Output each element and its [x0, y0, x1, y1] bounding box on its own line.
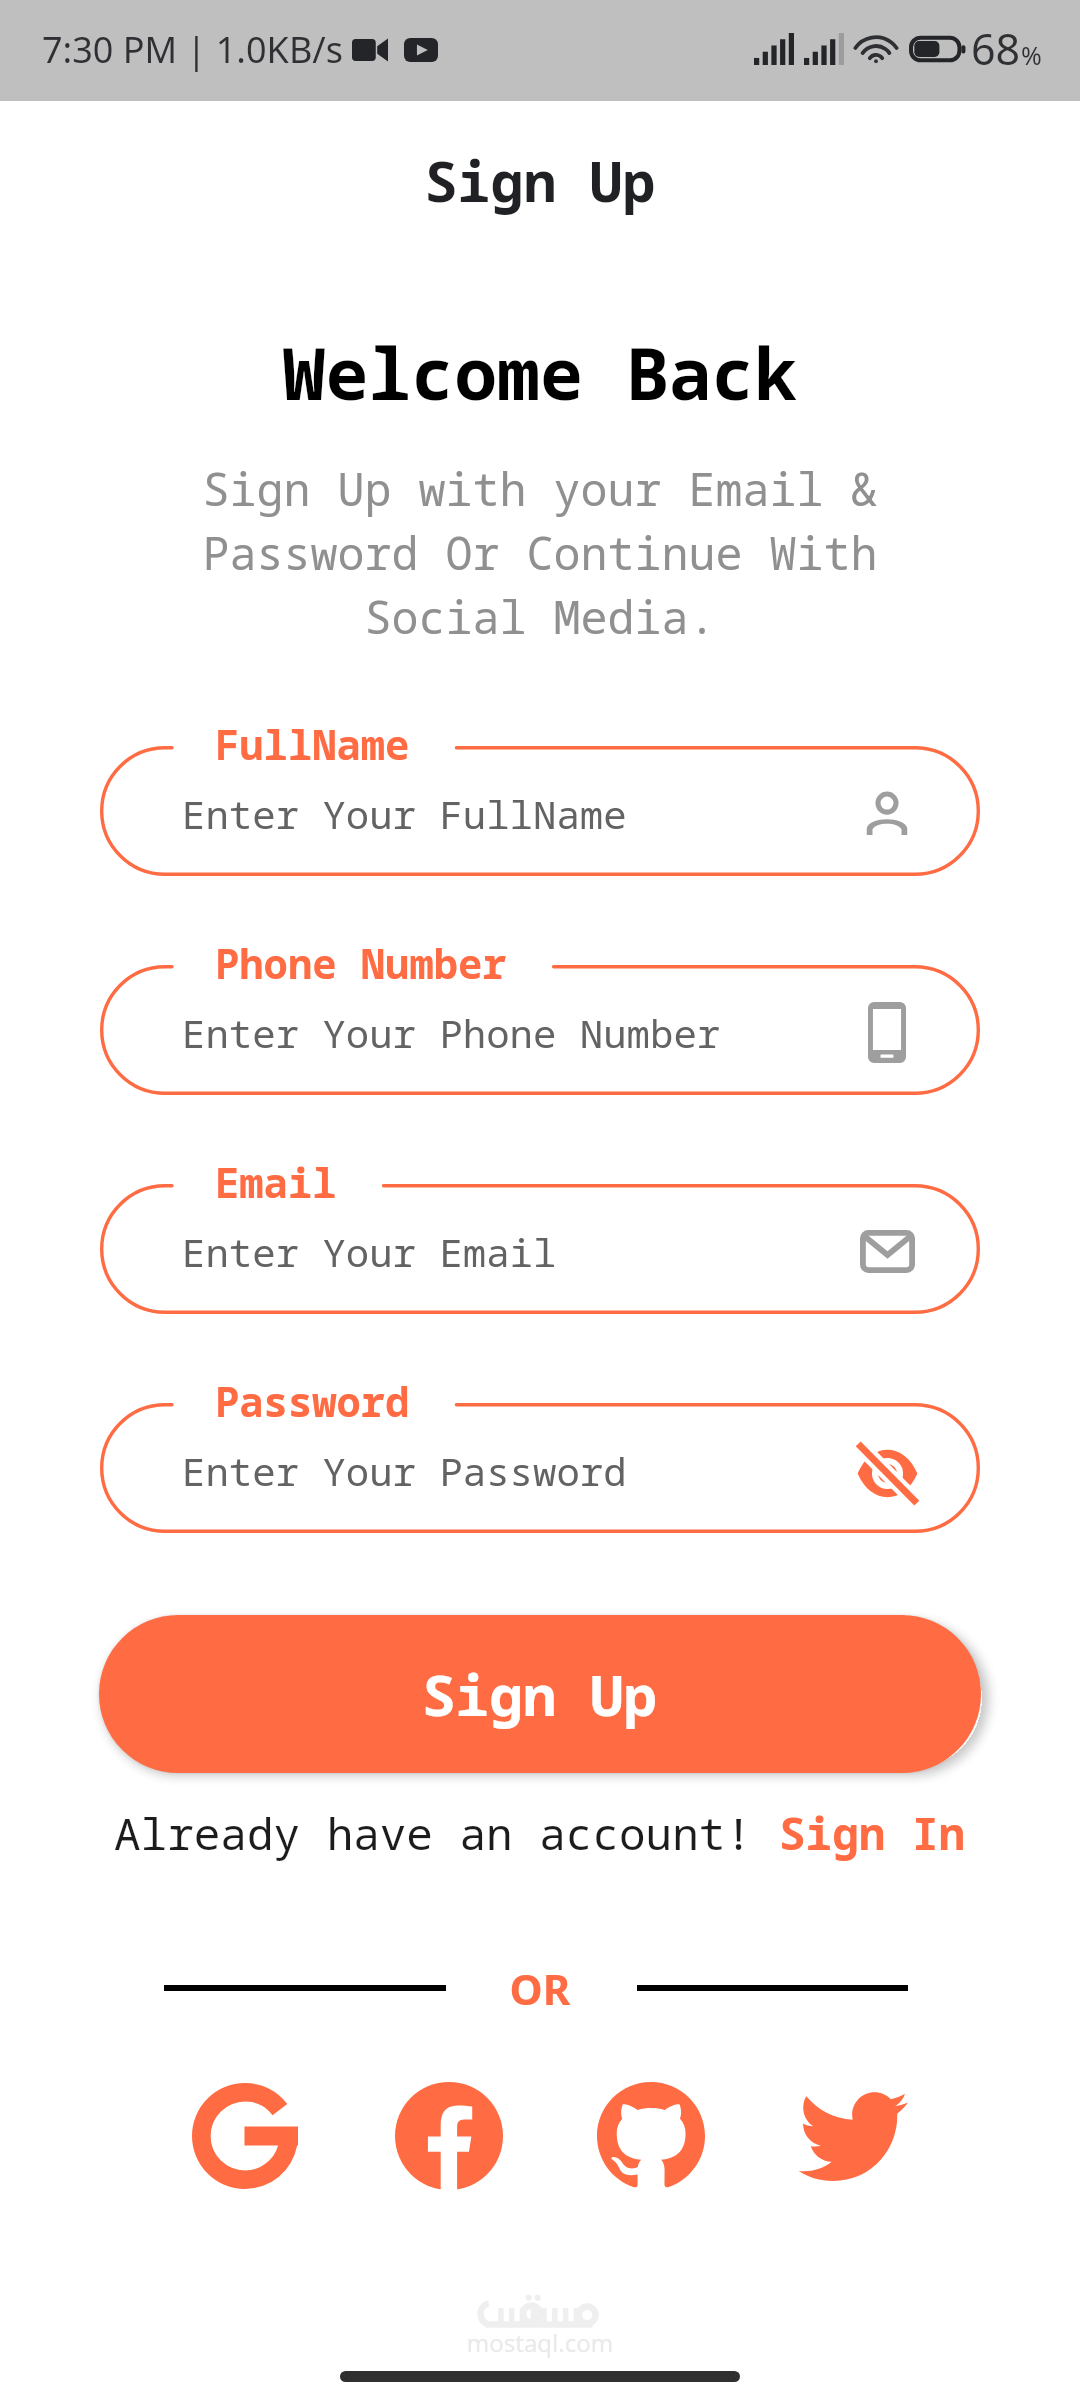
staticText: Enter Your Email — [182, 1225, 557, 1278]
staticText: mostaql.com — [0, 2326, 1080, 2359]
staticText: OR — [0, 1960, 1080, 2017]
staticText: Phone Number — [215, 936, 507, 991]
staticText: Enter Your Password — [182, 1444, 627, 1497]
staticText: Enter Your Phone Number — [182, 1006, 721, 1059]
button[interactable]: Sign up with GitHub — [586, 2071, 716, 2201]
staticText: Already have an account! — [114, 1803, 779, 1863]
button[interactable]: Password — [100, 1403, 980, 1533]
staticText: FullName — [215, 717, 410, 772]
staticText: 68 — [971, 19, 1021, 78]
button[interactable]: Phone Number — [100, 965, 980, 1095]
staticText: Password — [215, 1374, 410, 1429]
staticText: % — [1021, 38, 1042, 72]
staticText: Sign Up with your Email & Password Or Co… — [185, 458, 895, 647]
staticText: 7:30 PM | 1.0KB/s — [42, 25, 343, 74]
button[interactable]: Email — [100, 1184, 980, 1314]
staticText: Email — [215, 1155, 337, 1210]
staticText: Sign Up — [0, 143, 1080, 218]
button[interactable]: FullName — [100, 746, 980, 876]
staticText: Welcome Back — [0, 324, 1080, 421]
staticText: Sign In — [779, 1803, 966, 1863]
staticText: Enter Your FullName — [182, 787, 627, 840]
button[interactable]: Sign In — [779, 1803, 966, 1863]
button[interactable]: Sign up with Google — [180, 2071, 310, 2201]
button[interactable]: Sign up with Facebook — [384, 2071, 514, 2201]
button[interactable]: Sign up with Twitter — [789, 2071, 919, 2201]
staticText: Sign Up — [422, 1656, 658, 1732]
button[interactable]: Sign Up — [99, 1615, 981, 1773]
